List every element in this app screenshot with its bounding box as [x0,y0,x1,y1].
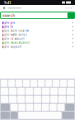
button[interactable] [25,88,33,95]
button[interactable] [9,96,16,103]
staticText: apple support [1,45,21,48]
button[interactable]: Key [1,104,10,111]
staticText: apple id account [1,37,24,40]
button[interactable] [45,80,52,87]
button[interactable]: apple tv [0,25,75,29]
button[interactable] [42,104,49,111]
button[interactable] [18,112,61,119]
button[interactable] [1,88,8,95]
button[interactable]: apple watch series [0,33,75,37]
button[interactable]: Key [11,112,18,119]
button[interactable] [50,88,58,95]
button[interactable] [58,88,66,95]
button[interactable] [17,96,25,103]
button[interactable] [8,80,15,87]
button[interactable] [9,88,16,95]
button[interactable] [67,88,74,95]
button[interactable] [25,96,33,103]
button[interactable] [42,88,49,95]
button[interactable] [30,80,37,87]
button[interactable] [68,80,74,87]
staticText: apple tv [1,25,12,28]
button[interactable] [38,80,44,87]
button[interactable] [18,104,25,111]
button[interactable] [57,104,64,111]
button[interactable]: apple id account [0,37,75,41]
button[interactable] [50,96,58,103]
button[interactable] [34,96,41,103]
button[interactable] [26,104,33,111]
button[interactable]: Key [1,112,10,119]
staticText: apple music student [1,41,29,44]
button[interactable] [67,96,74,103]
button[interactable] [58,96,66,103]
button[interactable] [34,104,41,111]
button[interactable]: apple support [0,45,75,49]
button[interactable] [42,96,49,103]
button[interactable] [11,104,18,111]
button[interactable] [23,80,30,87]
button[interactable] [1,96,8,103]
staticText: 9:41 [4,0,11,5]
button[interactable] [16,80,22,87]
button[interactable] [17,88,25,95]
staticText: search [2,13,14,18]
button[interactable]: Search [67,12,74,18]
button[interactable]: Key [65,104,74,111]
button[interactable] [1,80,7,87]
button[interactable]: apple store near me [0,29,75,33]
staticText: apple watch series [1,33,26,36]
button[interactable]: apple music student [0,41,75,45]
button[interactable] [53,80,59,87]
button[interactable]: apple pie [0,21,75,25]
button[interactable] [60,80,67,87]
button[interactable] [50,104,57,111]
staticText: apple pie [1,21,15,24]
button[interactable]: Key [62,112,74,119]
button[interactable] [34,88,41,95]
staticText: apple store near me [1,29,29,32]
